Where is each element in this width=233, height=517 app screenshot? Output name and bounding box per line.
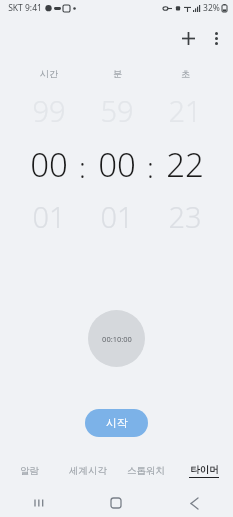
button[interactable]: 00:10:00 [88, 310, 145, 367]
staticText: 00 [30, 142, 68, 187]
staticText: 타이머 [190, 464, 219, 476]
button[interactable]: 타이머 [175, 458, 233, 484]
button[interactable]: 세계시각 [59, 458, 117, 484]
button[interactable]: More options [203, 25, 229, 51]
button[interactable]: Home [77, 489, 155, 517]
button[interactable]: Recent apps [0, 489, 77, 517]
staticText: 59 [100, 91, 134, 130]
staticText: 32% [203, 2, 220, 14]
button[interactable]: 스톱워치 [117, 458, 175, 484]
staticText: 23 [168, 197, 202, 236]
button[interactable]: Back [155, 489, 233, 517]
button[interactable]: 22 [151, 142, 219, 187]
staticText: 알람 [20, 465, 39, 477]
button[interactable]: 시작 [85, 409, 148, 437]
staticText: 22 [166, 142, 204, 187]
staticText: SKT 9:41 [8, 2, 42, 14]
staticText: 스톱워치 [127, 465, 165, 477]
staticText: 시간 [40, 68, 58, 79]
staticText: 시작 [106, 416, 128, 430]
button[interactable]: 00 [14, 142, 83, 187]
staticText: 01 [100, 197, 134, 236]
staticText: 분 [113, 68, 122, 79]
staticText: 초 [181, 68, 190, 79]
staticText: 01 [32, 197, 66, 236]
staticText: 세계시각 [69, 465, 107, 477]
staticText: 00 [98, 142, 136, 187]
button[interactable]: Add preset timer [173, 23, 203, 53]
button[interactable]: 알람 [0, 458, 59, 484]
staticText: 00:10:00 [102, 334, 132, 344]
staticText: 21 [168, 91, 202, 130]
staticText: 99 [32, 91, 66, 130]
button[interactable]: 00 [83, 142, 151, 187]
